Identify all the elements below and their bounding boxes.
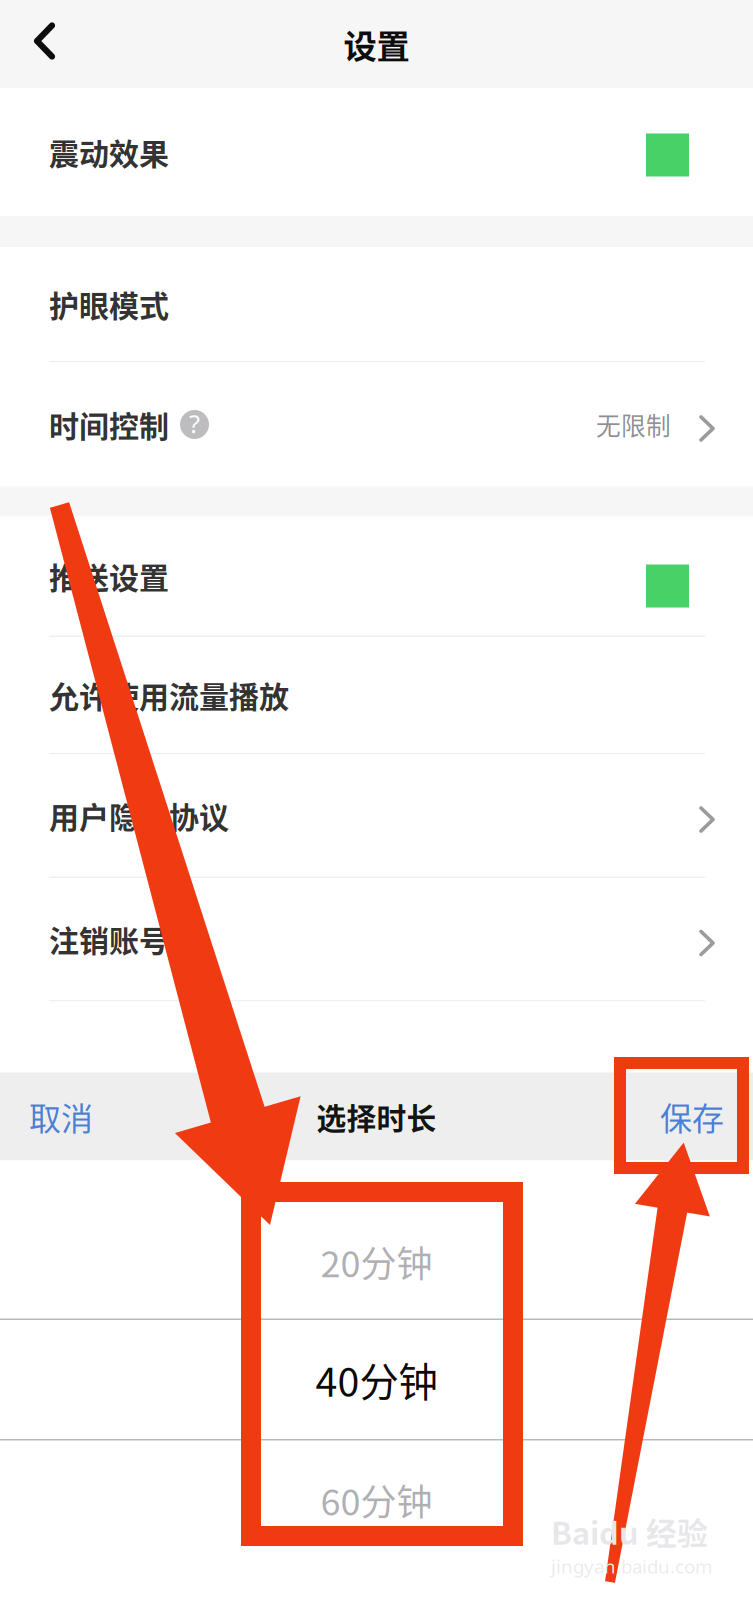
- staticText: 推送设置: [49, 554, 169, 598]
- button[interactable]: 返回: [0, 0, 79, 88]
- button[interactable]: 推送设置: [0, 516, 753, 635]
- button[interactable]: 保存: [634, 1072, 753, 1160]
- staticText: 震动效果: [49, 130, 169, 174]
- button[interactable]: 注销账号: [0, 878, 753, 1000]
- button[interactable]: 允许使用流量播放: [0, 637, 753, 753]
- button[interactable]: 用户隐私协议: [0, 754, 753, 876]
- staticText: 用户隐私协议: [49, 794, 229, 837]
- button[interactable]: 60分钟: [0, 1440, 753, 1599]
- staticText: 时间控制: [49, 403, 169, 446]
- staticText: jingyan.baidu.com: [551, 1554, 712, 1579]
- button[interactable]: 20分钟: [0, 1160, 753, 1318]
- button[interactable]: 取消: [0, 1072, 119, 1160]
- button[interactable]: 护眼模式: [0, 247, 753, 361]
- staticText: Baidu 经验: [551, 1509, 708, 1554]
- staticText: 60分钟: [320, 1474, 432, 1526]
- staticText: 选择时长: [316, 1095, 436, 1138]
- staticText: 允许使用流量播放: [49, 673, 289, 717]
- staticText: ?: [189, 406, 200, 441]
- staticText: 保存: [660, 1093, 724, 1140]
- staticText: 无限制: [596, 407, 671, 442]
- staticText: 20分钟: [320, 1235, 432, 1287]
- button[interactable]: 40分钟: [0, 1320, 753, 1439]
- staticText: 注销账号: [49, 917, 169, 961]
- staticText: 设置: [343, 20, 409, 68]
- button[interactable]: 时间控制: [0, 362, 753, 486]
- button[interactable]: 震动效果: [0, 88, 753, 216]
- staticText: 护眼模式: [49, 282, 169, 326]
- staticText: 取消: [29, 1093, 93, 1140]
- staticText: 40分钟: [315, 1351, 437, 1408]
